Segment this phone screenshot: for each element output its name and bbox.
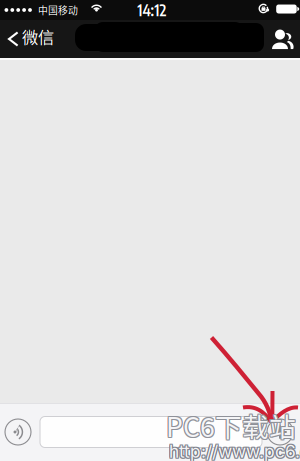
staticText: PC6下载站 [165,406,295,445]
staticText: PC6下载站 [167,407,297,446]
staticText: http://www.pc6.com [168,442,300,461]
staticText: PC6下载站 [166,405,296,444]
staticText: PC6下载站 [166,407,296,446]
staticText: 中国移动 [38,3,78,17]
staticText: http://www.pc6.com [169,441,300,461]
staticText: PC6下载站 [167,406,297,445]
button[interactable]: More [262,410,298,454]
button[interactable]: Chat info [263,20,300,58]
staticText: 微信 [22,25,54,48]
staticText: PC6下载站 [165,407,295,446]
button[interactable]: Voice message [0,410,40,454]
staticText: http://www.pc6.com [168,440,300,461]
staticText: PC6下载站 [166,406,296,445]
staticText: http://www.pc6.com [170,441,300,461]
staticText: PC6下载站 [165,405,295,444]
staticText: http://www.pc6.com [170,442,300,461]
staticText: http://www.pc6.com [169,440,300,461]
staticText: http://www.pc6.com [169,442,300,461]
staticText: http://www.pc6.com [168,441,300,461]
staticText: http://www.pc6.com [170,440,300,461]
button[interactable]: 微信 [0,20,62,58]
staticText: 14:12 [137,0,166,20]
staticText: PC6下载站 [167,405,297,444]
